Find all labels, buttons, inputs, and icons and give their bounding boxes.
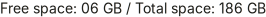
staticText: Free space: 06 GB / Total space: 186 GB (0, 0, 266, 17)
